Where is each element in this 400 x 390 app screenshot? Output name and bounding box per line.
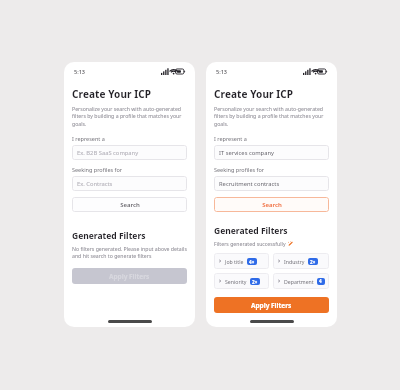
staticText: 2×: [310, 259, 316, 265]
button[interactable]: Industry: [273, 253, 329, 269]
button[interactable]: Department: [273, 273, 329, 289]
staticText: Personalize your search with auto-genera…: [214, 105, 329, 128]
staticText: Recruitment contracts: [219, 180, 280, 188]
staticText: Seeking profiles for: [72, 166, 123, 173]
staticText: Department: [284, 278, 314, 285]
staticText: Seeking profiles for: [214, 166, 265, 173]
staticText: Seniority: [225, 278, 247, 285]
staticText: 5:13: [74, 68, 85, 75]
button[interactable]: Seniority: [214, 273, 269, 289]
staticText: 4×: [319, 278, 323, 285]
staticText: Apply Filters: [251, 301, 292, 310]
staticText: Generated Filters: [72, 230, 146, 242]
staticText: Generated Filters: [214, 225, 288, 237]
button[interactable]: Ex. B2B SaaS company: [72, 145, 187, 160]
staticText: Personalize your search with auto-genera…: [72, 105, 187, 128]
staticText: 4×: [249, 259, 255, 265]
staticText: I represent a: [72, 135, 105, 142]
staticText: Ex. Contracts: [77, 180, 113, 188]
staticText: Industry: [284, 258, 305, 265]
staticText: 2×: [252, 279, 258, 285]
staticText: I represent a: [214, 135, 247, 142]
staticText: 5:13: [216, 68, 227, 75]
staticText: Search: [262, 201, 282, 209]
staticText: Filters generated successfully: [214, 240, 286, 247]
button[interactable]: IT services company: [214, 145, 329, 160]
staticText: No filters generated. Please input above…: [72, 245, 187, 260]
staticText: Apply Filters: [109, 272, 150, 281]
staticText: Create Your ICP: [72, 87, 152, 101]
staticText: Create Your ICP: [214, 87, 294, 101]
staticText: Ex. B2B SaaS company: [77, 149, 139, 157]
button[interactable]: Search: [214, 197, 329, 212]
staticText: Job title: [225, 258, 244, 265]
button[interactable]: Apply Filters: [72, 268, 187, 284]
button[interactable]: Job title: [214, 253, 269, 269]
button[interactable]: Apply Filters: [214, 297, 329, 313]
button[interactable]: Recruitment contracts: [214, 176, 329, 191]
button[interactable]: Search: [72, 197, 187, 212]
button[interactable]: Ex. Contracts: [72, 176, 187, 191]
staticText: IT services company: [219, 149, 274, 157]
staticText: Search: [120, 201, 140, 209]
